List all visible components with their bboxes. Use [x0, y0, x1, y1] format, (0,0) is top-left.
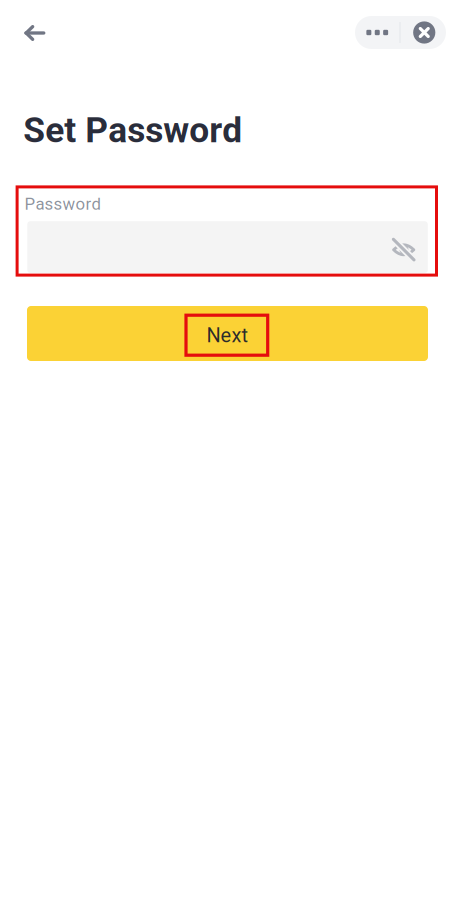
- staticText: Password: [25, 194, 101, 214]
- button[interactable]: Next: [27, 306, 428, 361]
- staticText: Set Password: [23, 109, 242, 151]
- button[interactable]: Close: [400, 16, 446, 49]
- button[interactable]: Show password: [387, 233, 421, 267]
- button[interactable]: Password: [27, 221, 428, 273]
- button[interactable]: Back: [13, 11, 57, 55]
- staticText: Next: [206, 324, 248, 347]
- button[interactable]: More options: [355, 16, 399, 49]
